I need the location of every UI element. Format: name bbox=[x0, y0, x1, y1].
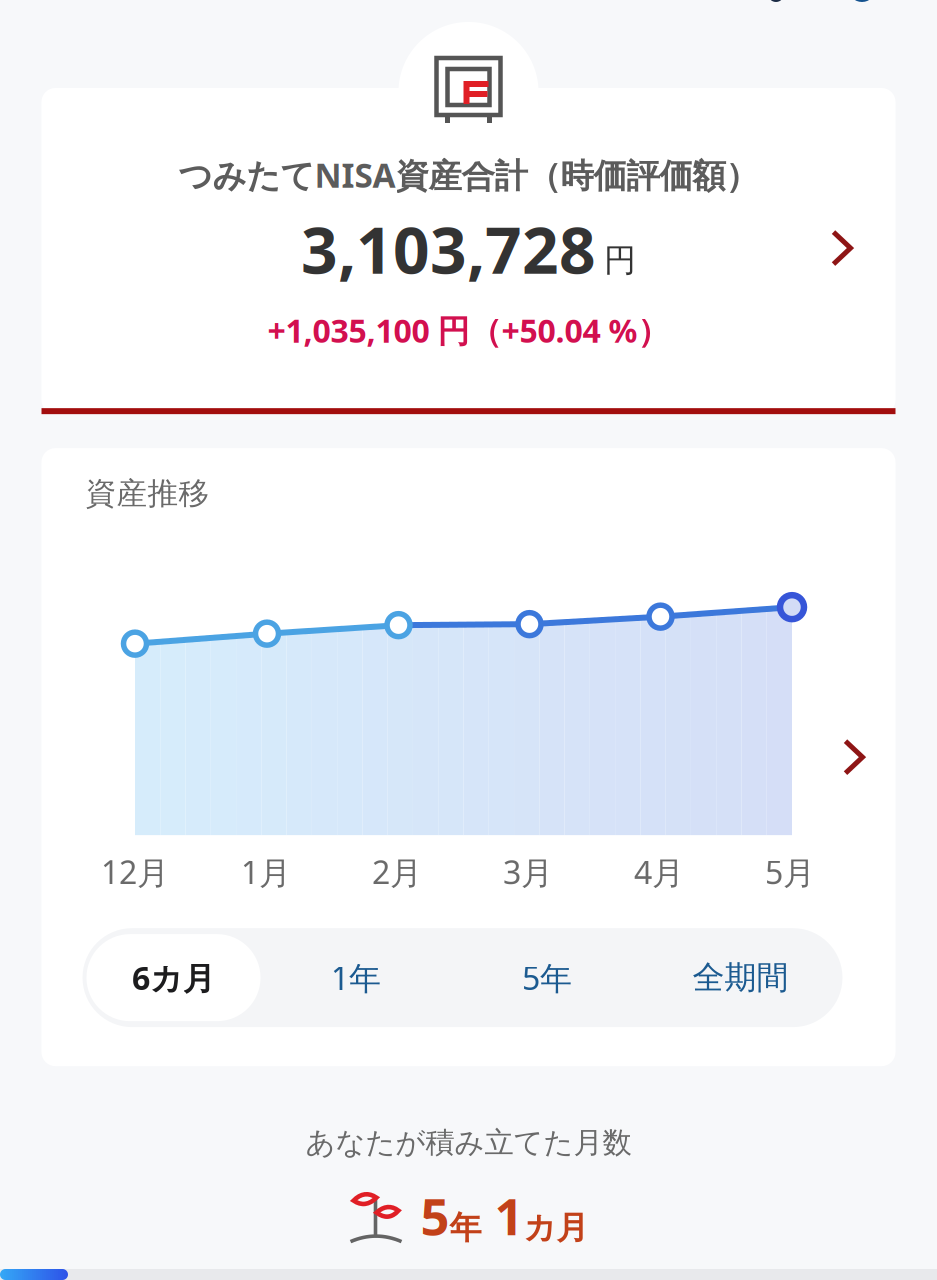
staticText: 3月 bbox=[503, 850, 553, 894]
staticText: 4月 bbox=[634, 850, 684, 894]
staticText: 3,103,728 bbox=[301, 205, 596, 293]
staticText: 円 bbox=[604, 240, 636, 281]
staticText: 資産推移 bbox=[85, 474, 209, 513]
staticText: 全期間 bbox=[692, 957, 788, 998]
staticText: 5月 bbox=[765, 850, 815, 894]
button[interactable]: 資産推移 bbox=[41, 448, 895, 1066]
staticText: 1年 bbox=[331, 956, 381, 999]
button[interactable]: つみたてNISA資産合計（時価評価額） bbox=[41, 88, 895, 414]
staticText: 5年 bbox=[522, 956, 572, 999]
staticText: 2月 bbox=[372, 850, 422, 894]
button[interactable]: Notifications bbox=[768, 0, 784, 8]
button[interactable]: 1年 bbox=[260, 934, 451, 1021]
button[interactable]: 6カ月 bbox=[86, 934, 260, 1021]
staticText: カ月 bbox=[523, 1208, 588, 1248]
staticText: 6カ月 bbox=[132, 956, 215, 999]
staticText: つみたてNISA資産合計（時価評価額） bbox=[178, 152, 758, 197]
button[interactable]: 5年 bbox=[451, 934, 642, 1021]
button[interactable]: Chat bbox=[0, 1269, 68, 1280]
button[interactable]: Account bbox=[848, 0, 876, 6]
staticText: 5 bbox=[420, 1181, 449, 1250]
staticText: 年 bbox=[449, 1208, 481, 1248]
staticText: +1,035,100 円（+50.04 %） bbox=[267, 309, 669, 352]
staticText: 12月 bbox=[101, 850, 169, 894]
staticText: 1月 bbox=[241, 850, 291, 894]
staticText: 1 bbox=[481, 1181, 523, 1250]
button[interactable]: 全期間 bbox=[642, 934, 838, 1021]
staticText: あなたが積み立てた月数 bbox=[305, 1124, 631, 1161]
